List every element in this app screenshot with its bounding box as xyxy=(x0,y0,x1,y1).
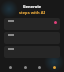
button[interactable] xyxy=(4,32,60,44)
button[interactable]: Tab 1 xyxy=(21,63,29,71)
button[interactable]: Tab 3 xyxy=(50,63,58,71)
staticText: Generate xyxy=(0,4,64,9)
button[interactable] xyxy=(4,18,60,30)
staticText: steps with AI xyxy=(0,10,64,15)
button[interactable] xyxy=(4,46,60,58)
button[interactable]: Tab 2 xyxy=(35,63,43,71)
button[interactable]: Tab 0 xyxy=(6,63,14,71)
